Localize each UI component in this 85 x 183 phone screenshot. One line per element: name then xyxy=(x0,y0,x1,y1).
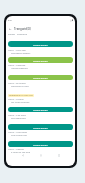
staticText: Unit 7 - Special xyxy=(8,148,24,151)
staticText: a note on the end xyxy=(11,151,31,154)
staticText: Lorem ipsum xyxy=(33,59,48,62)
button[interactable]: Lorem ipsum xyxy=(8,107,73,112)
staticText: ○ xyxy=(40,154,42,157)
staticText: Unit 3 - Bi Matsu xyxy=(8,82,26,85)
staticText: □ xyxy=(58,154,61,157)
staticText: Unit 4 - Crying xyxy=(8,98,24,101)
staticText: Spy exploring xyxy=(11,117,26,120)
staticText: Lorem ipsum xyxy=(33,76,48,79)
staticText: The School are xyxy=(11,134,27,137)
button[interactable]: Unit 6 - Unit Read xyxy=(8,131,73,137)
staticText: Interesting: In this Unit xyxy=(9,94,33,97)
staticText: Unit 5 - The easy xyxy=(8,114,26,117)
button[interactable]: Lorem ipsum xyxy=(8,141,73,147)
button[interactable]: Back xyxy=(8,26,13,31)
button[interactable]: Lorem ipsum xyxy=(8,57,73,63)
button[interactable]: Home xyxy=(38,153,43,158)
staticText: Sunshine xyxy=(17,33,27,36)
button[interactable]: Unit 1 - Let's talk xyxy=(8,49,73,55)
button[interactable]: Back xyxy=(20,153,25,158)
staticText: Lorem ipsum xyxy=(33,43,48,46)
staticText: Wonderful Report xyxy=(11,52,31,55)
staticText: My Mum Worries xyxy=(11,101,30,104)
staticText: Trangwid(O) xyxy=(14,27,31,31)
staticText: Follow xyxy=(8,33,15,36)
button[interactable]: Lorem ipsum xyxy=(8,41,73,47)
staticText: ◁ xyxy=(22,154,24,157)
staticText: Unit 1 - Let's talk xyxy=(8,49,26,52)
staticText: ← xyxy=(9,27,12,30)
button[interactable]: Lorem ipsum xyxy=(8,75,73,80)
button[interactable]: Unit 7 - Special xyxy=(8,148,73,154)
staticText: Welcome to unit xyxy=(11,85,29,88)
staticText: Young together xyxy=(11,67,28,70)
staticText: Unit 2 - Newmar xyxy=(8,64,26,67)
button[interactable]: Unit 3 - Bi Matsu xyxy=(8,82,73,88)
button[interactable]: Unit 2 - Newmar xyxy=(8,64,73,70)
staticText: 9:41 xyxy=(8,19,13,22)
button[interactable]: Unit 5 - The easy xyxy=(8,114,73,120)
button[interactable]: Recents xyxy=(57,153,62,158)
staticText: △▮ xyxy=(70,19,73,22)
button[interactable]: Lorem ipsum xyxy=(8,124,73,130)
button[interactable]: Interesting: In this Unit xyxy=(9,94,33,97)
button[interactable]: Unit 4 - Crying xyxy=(8,98,73,104)
staticText: Lorem ipsum xyxy=(33,126,48,129)
staticText: Lorem ipsum xyxy=(33,143,48,146)
staticText: Unit 6 - Unit Read xyxy=(8,131,27,134)
staticText: Lorem ipsum xyxy=(33,108,48,111)
